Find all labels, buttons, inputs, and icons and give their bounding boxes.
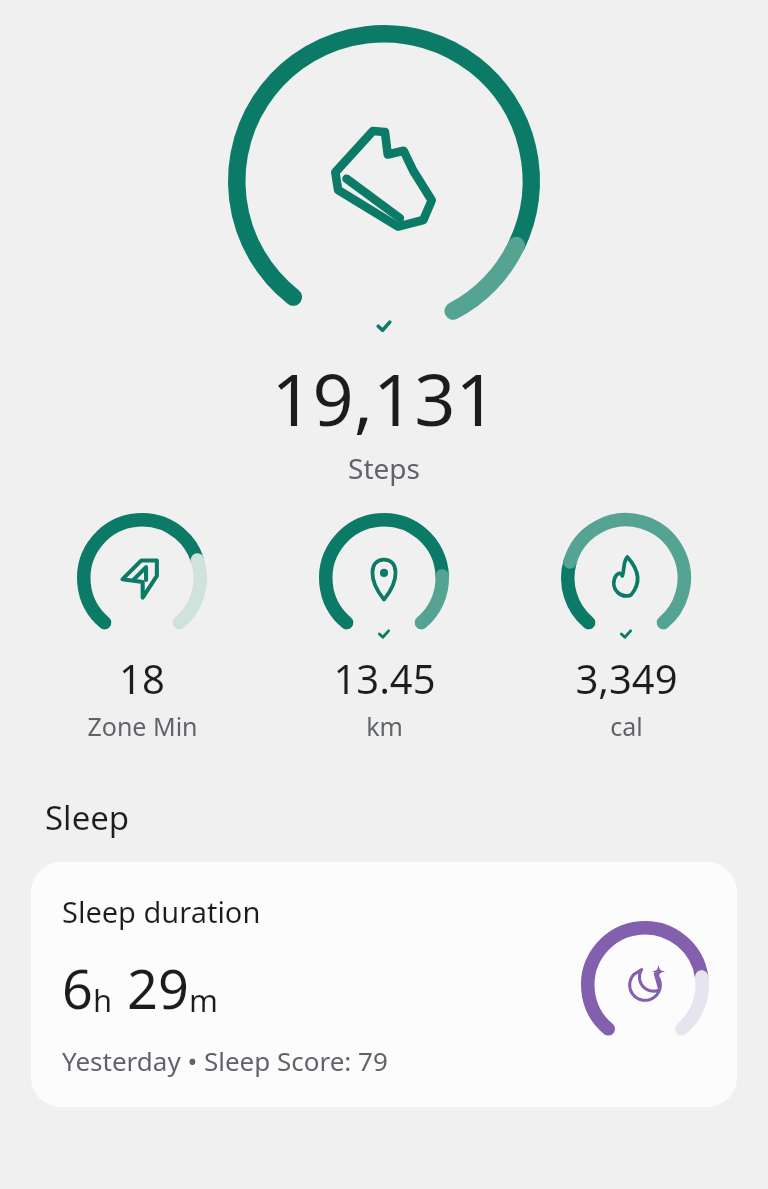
staticText: Zone Min [87, 709, 198, 743]
staticText: Sleep duration [62, 892, 261, 931]
staticText: 13.45 [333, 651, 436, 705]
staticText: Yesterday • Sleep Score: 79 [62, 1043, 388, 1078]
staticText: Sleep [45, 795, 130, 840]
staticText: m [189, 979, 218, 1021]
button[interactable]: Steps goal ring [228, 25, 540, 337]
staticText: h [93, 979, 113, 1021]
button[interactable]: 13.45 [284, 513, 484, 743]
other: Sleep score ring [581, 921, 709, 1049]
staticText: km [366, 709, 403, 743]
staticText: 19,131 [271, 349, 497, 447]
staticText: Steps [348, 449, 420, 487]
staticText: 6 [62, 951, 93, 1025]
staticText: 29 [127, 951, 189, 1025]
staticText: 18 [119, 651, 165, 705]
button[interactable]: 3,349 [526, 513, 726, 743]
staticText: cal [610, 709, 643, 743]
staticText: 3,349 [575, 651, 678, 705]
button[interactable]: Sleep duration [31, 862, 737, 1107]
button[interactable]: 18 [42, 513, 242, 743]
